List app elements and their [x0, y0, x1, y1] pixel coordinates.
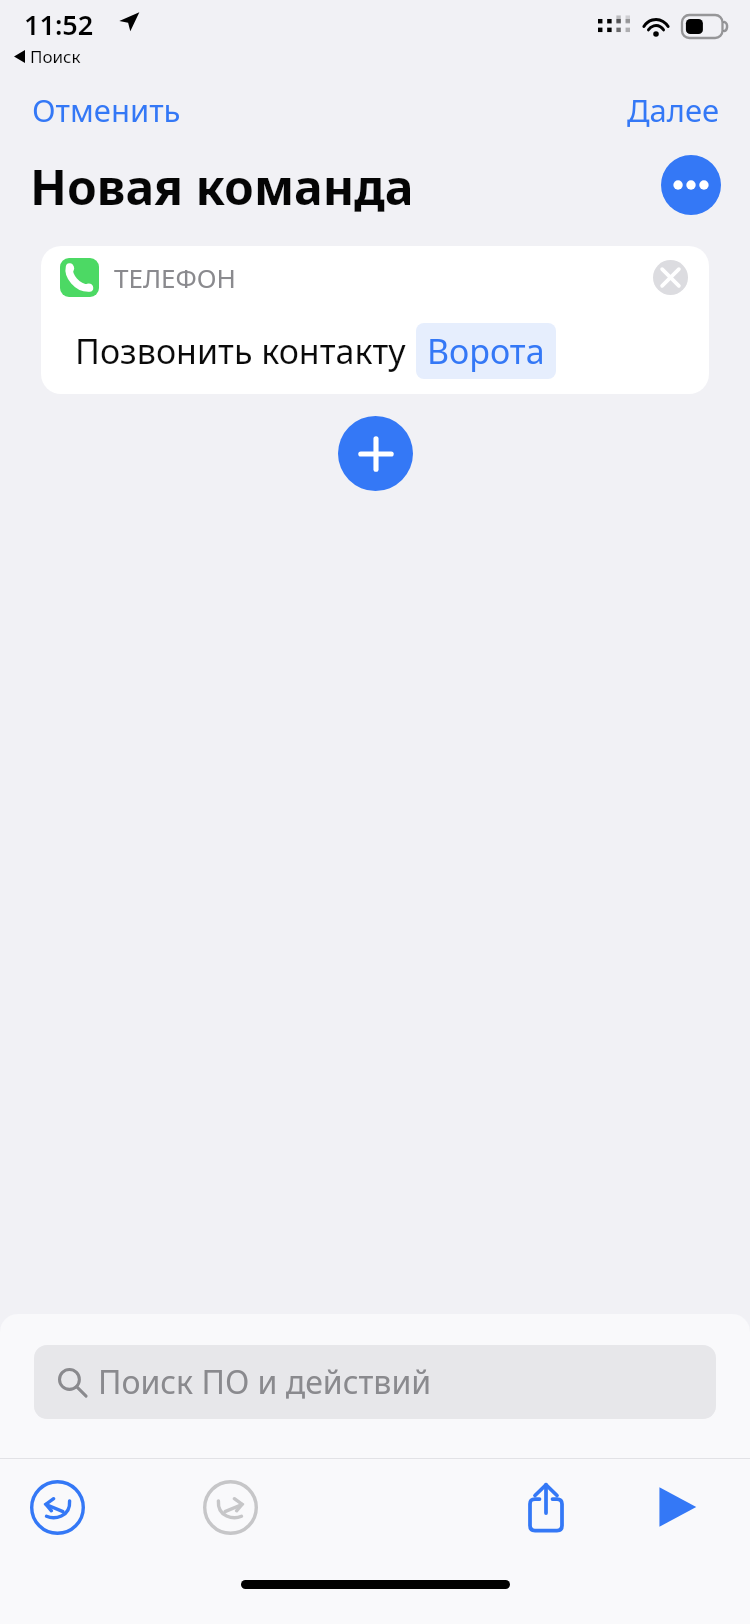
button[interactable]: Поиск ПО и действий	[34, 1345, 716, 1419]
button[interactable]: Отменить	[0, 83, 213, 137]
staticText: Ворота	[427, 328, 545, 374]
staticText: 11:52	[24, 6, 94, 43]
staticText: Отменить	[32, 89, 181, 131]
button[interactable]: Share	[504, 1465, 588, 1549]
button[interactable]: Ворота	[416, 323, 556, 379]
staticText: Далее	[627, 89, 720, 131]
staticText: Новая команда	[30, 154, 414, 219]
button[interactable]: Add action	[338, 416, 413, 491]
staticText: Поиск	[30, 45, 81, 68]
button[interactable]: More options	[661, 155, 721, 215]
staticText: Поиск ПО и действий	[98, 1360, 432, 1404]
button[interactable]: Run shortcut	[634, 1465, 718, 1549]
button[interactable]: Redo	[188, 1465, 272, 1549]
button[interactable]: ТЕЛЕФОН	[41, 246, 709, 394]
staticText: ТЕЛЕФОН	[114, 260, 236, 295]
staticText: Позвонить контакту	[75, 328, 406, 374]
button[interactable]: Remove action	[648, 255, 692, 299]
button[interactable]: Undo	[15, 1465, 99, 1549]
button[interactable]: Далее	[597, 83, 750, 137]
